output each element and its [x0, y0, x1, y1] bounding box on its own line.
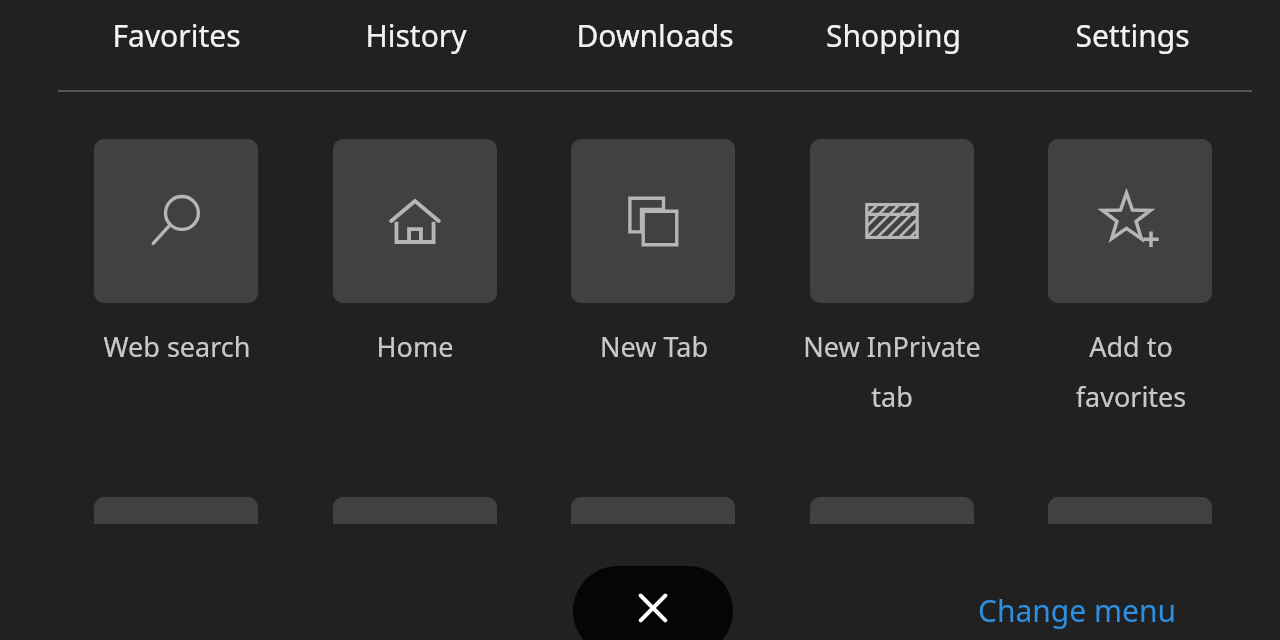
staticText: Downloads: [576, 15, 734, 56]
staticText: Home: [325, 328, 505, 365]
button[interactable]: Close menu: [573, 566, 733, 640]
button[interactable]: Downloads: [535, 0, 774, 70]
staticText: Change menu: [978, 590, 1177, 631]
button[interactable]: Web search: [57, 328, 296, 365]
staticText: Web search: [87, 328, 267, 365]
staticText: Add to favorites: [1041, 328, 1221, 415]
button[interactable]: Home: [295, 328, 534, 365]
staticText: New Tab: [564, 328, 744, 365]
button[interactable]: [571, 497, 735, 524]
button[interactable]: Change menu: [970, 586, 1185, 635]
button[interactable]: New Tab: [534, 328, 773, 365]
button[interactable]: Favorites: [57, 0, 296, 70]
staticText: Shopping: [826, 15, 961, 56]
button[interactable]: [1048, 497, 1212, 524]
staticText: Settings: [1075, 15, 1190, 56]
button[interactable]: [810, 497, 974, 524]
button[interactable]: Shopping: [774, 0, 1013, 70]
button[interactable]: History: [296, 0, 535, 70]
button[interactable]: New Tab: [571, 139, 735, 303]
button[interactable]: Home: [333, 139, 497, 303]
button[interactable]: [333, 497, 497, 524]
button[interactable]: Add to favorites: [1048, 139, 1212, 303]
button[interactable]: New InPrivate tab: [772, 328, 1011, 415]
staticText: History: [365, 15, 467, 56]
staticText: New InPrivate tab: [802, 328, 982, 415]
button[interactable]: Add to favorites: [1011, 328, 1250, 415]
staticText: Favorites: [112, 15, 241, 56]
button[interactable]: New InPrivate tab: [810, 139, 974, 303]
button[interactable]: [94, 497, 258, 524]
button[interactable]: Web search: [94, 139, 258, 303]
button[interactable]: Settings: [1013, 0, 1252, 70]
